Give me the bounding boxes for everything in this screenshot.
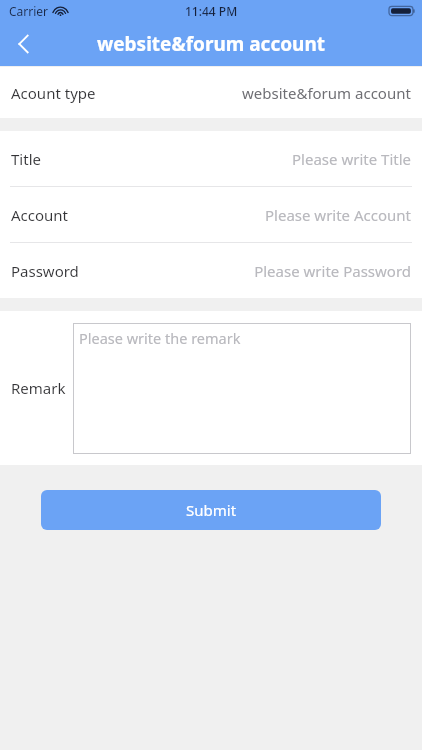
staticText: Account [11, 205, 69, 225]
staticText: website&forum account [242, 83, 411, 103]
staticText: Carrier [9, 3, 49, 19]
staticText: Acount type [11, 83, 96, 103]
staticText: Title [11, 149, 41, 169]
staticText: 11:44 PM [185, 3, 238, 19]
staticText: Please write Account [264, 205, 411, 225]
staticText: website&forum account [97, 31, 326, 57]
button[interactable]: Acount type [0, 67, 422, 118]
button[interactable]: Account [0, 187, 422, 242]
button[interactable]: Password [0, 243, 422, 298]
staticText: Password [11, 261, 79, 281]
staticText: Please write Password [254, 261, 411, 281]
button[interactable]: Submit [41, 490, 381, 530]
button[interactable]: Title [0, 131, 422, 186]
staticText: Please write the remark [79, 328, 241, 348]
staticText: Please write Title [292, 149, 411, 169]
button[interactable]: Back [0, 22, 46, 66]
staticText: Submit [186, 500, 237, 520]
staticText: Remark [11, 378, 66, 398]
button[interactable]: Please write the remark [73, 323, 411, 454]
